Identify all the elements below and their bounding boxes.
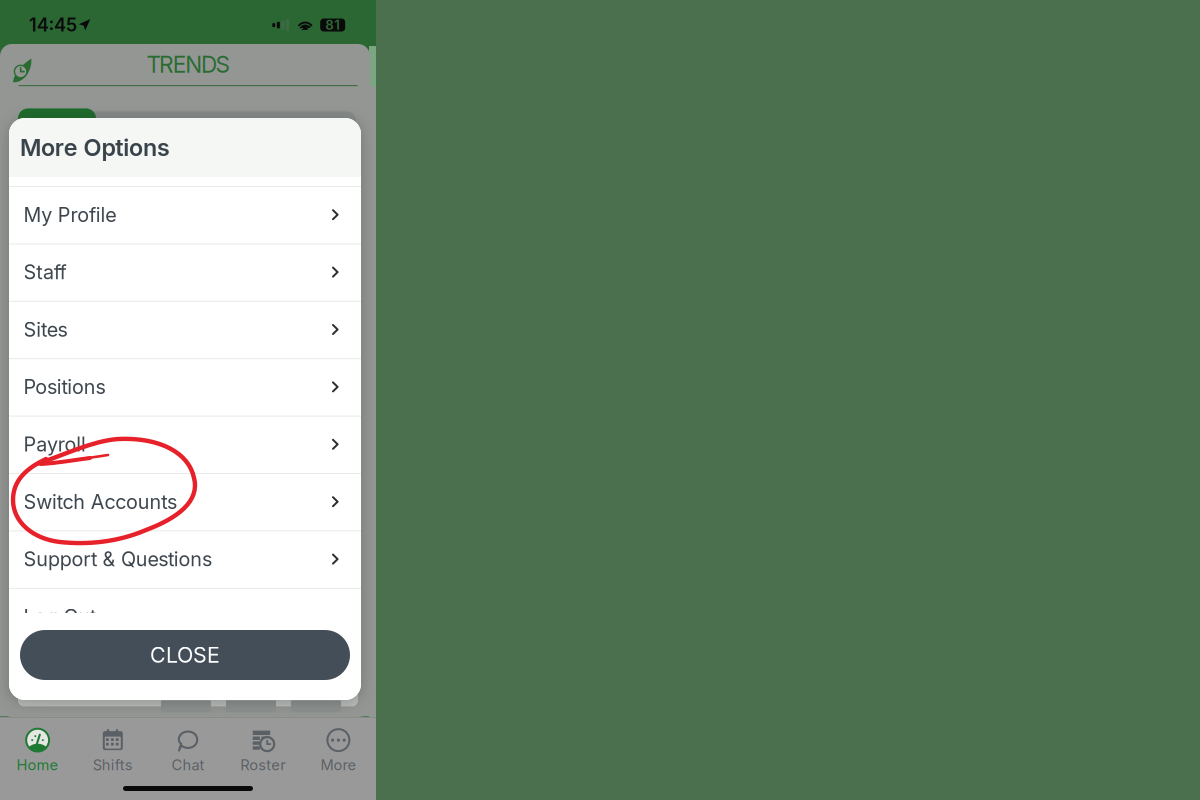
staticText: Chat <box>171 756 204 774</box>
staticText: Support & Questions <box>23 547 212 571</box>
staticText: Log Out <box>23 605 96 628</box>
staticText: Switch Accounts <box>23 490 177 514</box>
staticText: My Profile <box>23 203 116 227</box>
button[interactable]: Payroll <box>9 416 361 473</box>
staticText: TRENDS <box>146 51 229 78</box>
staticText: Payroll <box>23 432 86 456</box>
button[interactable]: Switch Accounts <box>9 473 361 530</box>
button[interactable]: Sites <box>9 301 361 358</box>
button[interactable]: Home <box>0 728 75 774</box>
button[interactable]: Roster <box>226 728 301 774</box>
staticText: Shifts <box>93 756 133 774</box>
button[interactable]: CLOSE <box>20 630 350 680</box>
staticText: Roster <box>240 756 286 774</box>
button[interactable]: Shifts <box>75 728 150 774</box>
staticText: More Options <box>20 133 170 162</box>
staticText: Staff <box>23 260 66 284</box>
staticText: 81 <box>325 17 340 33</box>
button[interactable]: Log Out <box>9 588 361 645</box>
button[interactable]: Support & Questions <box>9 530 361 588</box>
staticText: More <box>320 756 356 774</box>
staticText: Positions <box>23 375 105 399</box>
staticText: CLOSE <box>150 642 220 668</box>
button[interactable]: Staff <box>9 243 361 301</box>
staticText: 14:45 <box>29 14 77 36</box>
button[interactable]: Positions <box>9 358 361 416</box>
button[interactable]: My Profile <box>9 186 361 243</box>
button[interactable]: Chat <box>150 728 226 774</box>
button[interactable]: More <box>301 728 376 774</box>
staticText: Sites <box>23 318 67 341</box>
staticText: Home <box>17 756 59 774</box>
